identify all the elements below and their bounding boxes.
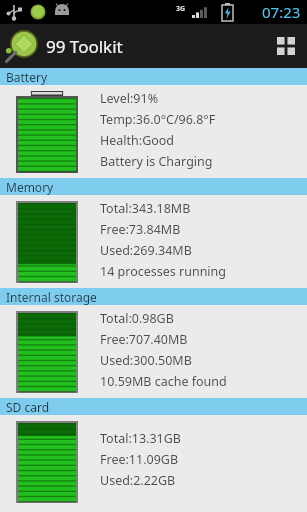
staticText: 14 processes running: [100, 263, 227, 280]
staticText: Battery is Charging: [100, 153, 213, 170]
staticText: Free:11.09GB: [100, 451, 179, 468]
staticText: Battery: [6, 69, 48, 85]
staticText: Used:269.34MB: [100, 242, 192, 259]
staticText: Memory: [6, 179, 54, 195]
staticText: Free:73.84MB: [100, 221, 181, 238]
staticText: Total:13.31GB: [100, 430, 181, 447]
staticText: Used:2.22GB: [100, 472, 176, 489]
staticText: Temp:36.0°C/96.8°F: [100, 111, 216, 128]
staticText: Internal storage: [6, 289, 97, 305]
staticText: Used:300.50MB: [100, 352, 192, 369]
staticText: 10.59MB cache found: [100, 373, 227, 390]
staticText: Health:Good: [100, 132, 175, 149]
staticText: Free:707.40MB: [100, 331, 188, 348]
button[interactable]: Memory: [0, 178, 307, 288]
staticText: 07:23: [262, 2, 301, 22]
staticText: Total:0.98GB: [100, 310, 174, 327]
staticText: 99 Toolkit: [46, 35, 123, 58]
staticText: Level:91%: [100, 90, 159, 107]
button[interactable]: Battery: [0, 68, 307, 178]
staticText: 3G: [176, 4, 186, 14]
staticText: Total:343.18MB: [100, 200, 191, 217]
button[interactable]: Apps grid: [265, 24, 307, 68]
button[interactable]: SD card: [0, 398, 307, 508]
button[interactable]: Internal storage: [0, 288, 307, 398]
staticText: SD card: [6, 399, 50, 415]
